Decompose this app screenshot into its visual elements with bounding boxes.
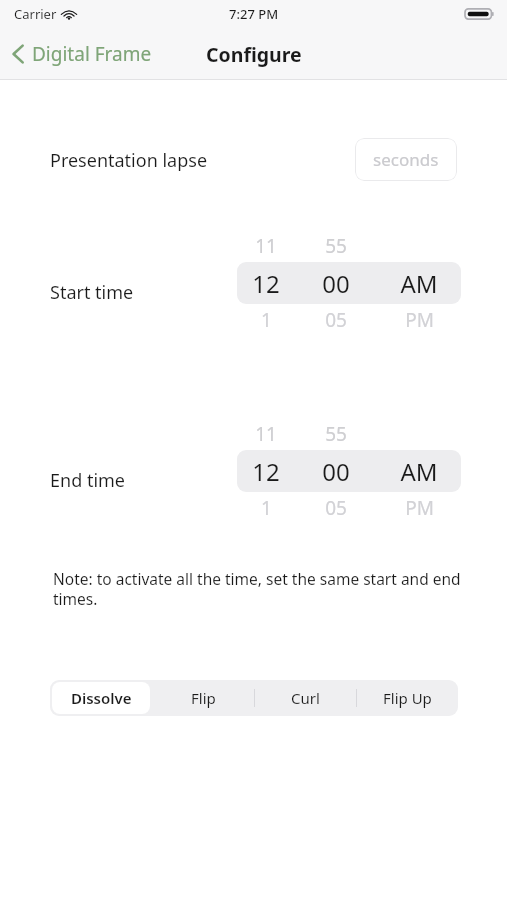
button[interactable]: 1	[237, 495, 295, 521]
staticText: 12	[252, 455, 280, 488]
staticText: Start time	[50, 280, 134, 305]
button[interactable]: Digital Frame	[0, 35, 162, 73]
button[interactable]: Flip Up	[356, 680, 458, 716]
staticText: Curl	[291, 688, 320, 708]
button[interactable]: AM	[377, 455, 461, 488]
button[interactable]: 55	[295, 421, 377, 447]
button[interactable]: 00	[295, 455, 377, 488]
button[interactable]: 11	[237, 421, 295, 447]
button[interactable]: PM	[377, 495, 461, 521]
staticText: 1	[261, 307, 272, 333]
button[interactable]: 05	[295, 307, 377, 333]
staticText: 00	[322, 267, 350, 300]
staticText: 11	[255, 233, 277, 259]
staticText: PM	[405, 495, 434, 521]
staticText: seconds	[373, 148, 439, 171]
staticText: 05	[325, 307, 347, 333]
staticText: 00	[322, 455, 350, 488]
staticText: PM	[405, 307, 434, 333]
staticText: Dissolve	[71, 688, 132, 708]
button[interactable]: 05	[295, 495, 377, 521]
staticText: 12	[252, 267, 280, 300]
button[interactable]: 11	[237, 233, 295, 259]
staticText: 11	[255, 421, 277, 447]
staticText: 1	[261, 495, 272, 521]
staticText: Digital Frame	[32, 41, 152, 67]
staticText: 55	[325, 233, 347, 259]
staticText: Flip	[191, 688, 216, 708]
button[interactable]: PM	[377, 307, 461, 333]
staticText: Flip Up	[383, 688, 432, 708]
staticText: 7:27 PM	[229, 5, 279, 23]
button[interactable]: 1	[237, 307, 295, 333]
button[interactable]: AM	[377, 267, 461, 300]
button[interactable]: Flip	[152, 680, 254, 716]
button[interactable]: Curl	[254, 680, 356, 716]
staticText: AM	[400, 267, 438, 300]
staticText: 05	[325, 495, 347, 521]
button[interactable]: 00	[295, 267, 377, 300]
staticText: End time	[50, 468, 126, 493]
button[interactable]: 12	[237, 455, 295, 488]
staticText: Presentation lapse	[50, 148, 208, 173]
staticText: 55	[325, 421, 347, 447]
staticText: Configure	[206, 41, 302, 68]
button[interactable]: 55	[295, 233, 377, 259]
staticText: Carrier	[14, 5, 57, 23]
button[interactable]: Dissolve	[50, 680, 152, 716]
button[interactable]: 12	[237, 267, 295, 300]
staticText: AM	[400, 455, 438, 488]
staticText: Note: to activate all the time, set the …	[53, 568, 473, 610]
button[interactable]: seconds	[355, 138, 457, 181]
